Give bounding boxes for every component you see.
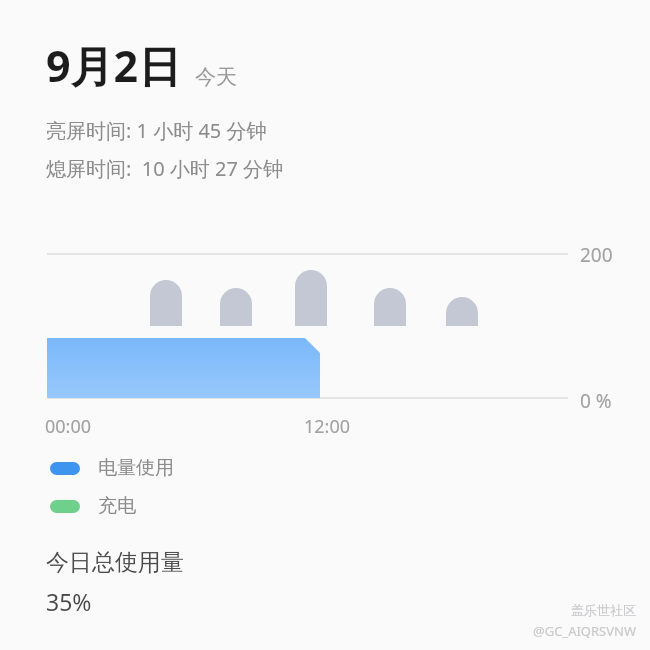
staticText: 00:00 [45,414,92,439]
staticText: 电量使用 [98,456,174,480]
button[interactable]: 充电 [50,494,136,518]
staticText: 12:00 [304,414,351,439]
staticText: 盖乐世社区 [571,602,636,618]
staticText: 9月2日 [46,36,182,95]
button[interactable]: 9月2日 [46,36,237,95]
staticText: 亮屏时间: 1 小时 45 分钟 [46,117,267,144]
staticText: 今日总使用量 [46,548,184,577]
button[interactable]: 电量使用 [50,456,174,480]
staticText: 0 % [580,388,612,414]
staticText: @GC_AIQRSVNW [533,622,636,640]
staticText: 今天 [195,64,237,90]
staticText: 充电 [98,494,136,518]
staticText: 熄屏时间: 10 小时 27 分钟 [46,155,284,182]
staticText: 200 [580,242,613,268]
staticText: 35% [46,586,92,617]
